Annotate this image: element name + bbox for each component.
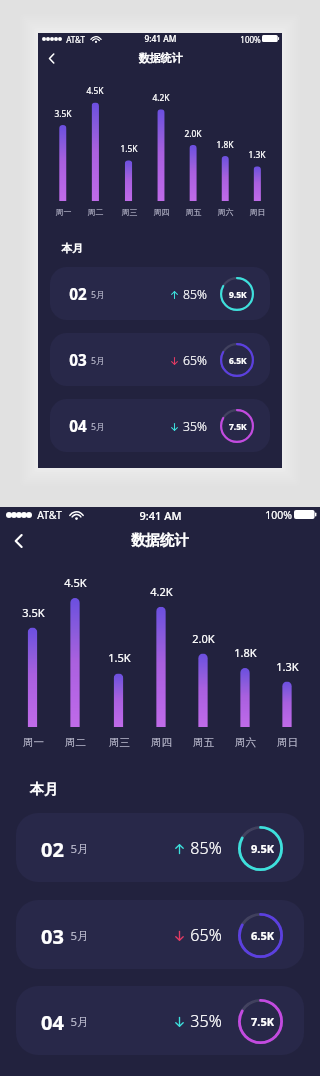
staticText: 7.5K xyxy=(251,1014,274,1029)
staticText: 9.5K xyxy=(229,289,247,300)
staticText: 9:41 AM xyxy=(144,33,177,44)
staticText: 本月 xyxy=(30,781,58,799)
staticText: 4.2K xyxy=(150,584,173,599)
staticText: 3.5K xyxy=(54,108,72,119)
staticText: 周六 xyxy=(235,736,256,749)
staticText: 100% xyxy=(240,34,261,45)
button[interactable]: 02 xyxy=(16,813,304,882)
staticText: AT&T xyxy=(37,508,62,522)
staticText: 65% xyxy=(190,924,222,946)
staticText: 4.5K xyxy=(64,575,87,590)
staticText: 周一 xyxy=(23,736,44,749)
staticText: 4.2K xyxy=(152,92,170,103)
staticText: AT&T xyxy=(66,34,85,45)
staticText: 周五 xyxy=(193,736,214,749)
staticText: 周日 xyxy=(249,207,266,217)
staticText: 5月 xyxy=(70,928,89,944)
button[interactable]: 03 xyxy=(16,900,304,969)
staticText: 1.3K xyxy=(248,149,266,160)
staticText: 6.5K xyxy=(229,355,247,366)
staticText: 1.3K xyxy=(276,659,299,674)
staticText: 100% xyxy=(265,508,292,522)
staticText: 5月 xyxy=(91,289,105,301)
staticText: 1.8K xyxy=(234,645,257,660)
button[interactable]: 04 xyxy=(50,399,270,452)
staticText: 周四 xyxy=(153,207,170,217)
staticText: 周三 xyxy=(121,207,138,217)
staticText: 02 xyxy=(41,836,64,862)
staticText: 7.5K xyxy=(229,421,247,432)
staticText: 5月 xyxy=(70,841,89,857)
staticText: 周四 xyxy=(151,736,172,749)
staticText: 周二 xyxy=(87,207,104,217)
staticText: 5月 xyxy=(91,355,105,367)
staticText: 65% xyxy=(183,352,207,369)
staticText: 04 xyxy=(69,416,87,436)
staticText: 1.8K xyxy=(216,139,234,150)
staticText: 3.5K xyxy=(22,605,45,620)
staticText: 03 xyxy=(41,923,64,949)
staticText: 周日 xyxy=(277,736,298,749)
staticText: 85% xyxy=(190,837,222,859)
staticText: 1.5K xyxy=(120,143,138,154)
staticText: 4.5K xyxy=(86,85,104,96)
staticText: 5月 xyxy=(91,421,105,433)
button[interactable]: 02 xyxy=(50,267,270,320)
staticText: 1.5K xyxy=(108,650,131,665)
staticText: 2.0K xyxy=(184,128,202,139)
staticText: 周五 xyxy=(185,207,202,217)
staticText: 5月 xyxy=(70,1014,89,1030)
staticText: 本月 xyxy=(61,242,83,255)
staticText: 数据统计 xyxy=(131,531,189,549)
staticText: 9.5K xyxy=(251,841,274,856)
button[interactable]: 04 xyxy=(16,986,304,1055)
staticText: 9:41 AM xyxy=(139,508,182,523)
staticText: 04 xyxy=(41,1009,64,1035)
staticText: 数据统计 xyxy=(138,51,183,65)
staticText: 周三 xyxy=(109,736,130,749)
staticText: 03 xyxy=(69,350,87,370)
staticText: 周一 xyxy=(55,207,72,217)
staticText: 6.5K xyxy=(251,928,274,943)
staticText: 02 xyxy=(69,284,87,304)
button[interactable]: 03 xyxy=(50,333,270,386)
staticText: 2.0K xyxy=(192,631,215,646)
staticText: 35% xyxy=(190,1010,222,1032)
button[interactable]: Back xyxy=(3,526,33,556)
staticText: 周六 xyxy=(217,207,234,217)
staticText: 35% xyxy=(183,418,207,435)
button[interactable]: Back xyxy=(40,47,63,70)
staticText: 85% xyxy=(183,286,207,303)
staticText: 周二 xyxy=(65,736,86,749)
